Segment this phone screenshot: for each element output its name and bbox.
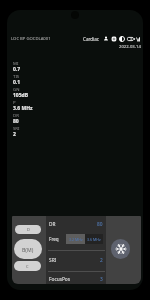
staticText: DR [49,221,56,228]
staticText: MI [13,60,19,66]
staticText: 2 [100,257,103,264]
button[interactable]: Settings [111,36,117,42]
button[interactable]: Brightness [119,36,125,42]
staticText: D [27,227,30,232]
button[interactable]: Freeze [111,239,130,259]
button[interactable]: FocusPos [49,275,103,283]
staticText: TIS [13,73,20,79]
staticText: 3.6 MHz [87,237,101,242]
staticText: Cardiac [83,36,100,42]
staticText: 3.6 MHz [13,105,33,112]
staticText: 3 [100,276,103,283]
button[interactable]: Patient [103,36,109,42]
button[interactable]: D [15,225,41,234]
staticText: 2022-03-14 [119,44,141,50]
staticText: SRI [49,257,57,264]
staticText: 3.2 MHz [69,237,83,242]
staticText: GN [13,86,20,92]
staticText: Freq [49,236,59,242]
button[interactable]: 3.2 MHz [66,234,85,244]
button[interactable]: C [14,261,41,271]
staticText: B(M) [22,246,34,253]
button[interactable]: 3.6 MHz [85,234,103,244]
staticText: SRI [13,125,20,131]
staticText: FocusPos [49,276,71,283]
staticText: 80 [97,221,103,228]
staticText: C [26,264,29,269]
staticText: 2 [13,131,16,138]
button[interactable]: B(M) [14,239,42,259]
staticText: DR [13,112,19,118]
button[interactable]: SRI [49,256,103,264]
staticText: 0.7 [13,66,21,73]
staticText: LOC BP GOCDLA001 [11,36,51,42]
button[interactable]: DR [49,220,103,228]
staticText: 105dB [13,92,29,99]
staticText: 80 [13,118,19,125]
staticText: P [13,99,16,105]
staticText: 0.1 [13,79,21,86]
